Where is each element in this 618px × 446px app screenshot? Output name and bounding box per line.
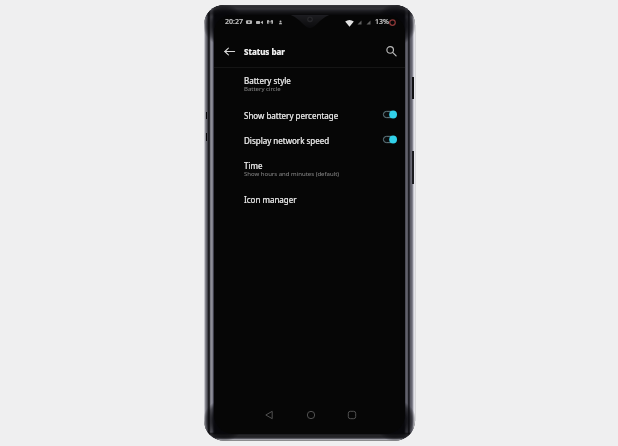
staticText: Status bar [244,46,285,57]
button[interactable]: Battery style [214,75,405,96]
staticText: Time [244,160,263,171]
button[interactable]: Home [298,402,324,428]
button[interactable]: Search [380,40,402,62]
staticText: Battery circle [244,85,281,93]
button[interactable]: Display network speed [214,135,405,148]
staticText: Icon manager [244,194,297,205]
button[interactable]: Recents [339,402,365,428]
button[interactable]: Show battery percentage [214,110,405,123]
button[interactable]: Back [256,402,282,428]
staticText: 13% [375,17,389,27]
staticText: Battery style [244,75,291,86]
button[interactable]: Back [218,40,240,62]
staticText: Show battery percentage [244,110,339,121]
staticText: Display network speed [244,135,330,146]
staticText: Show hours and minutes (default) [244,170,340,178]
button[interactable]: Icon manager [214,194,405,207]
button[interactable]: Time [214,160,405,181]
staticText: 20:27 [225,17,243,27]
